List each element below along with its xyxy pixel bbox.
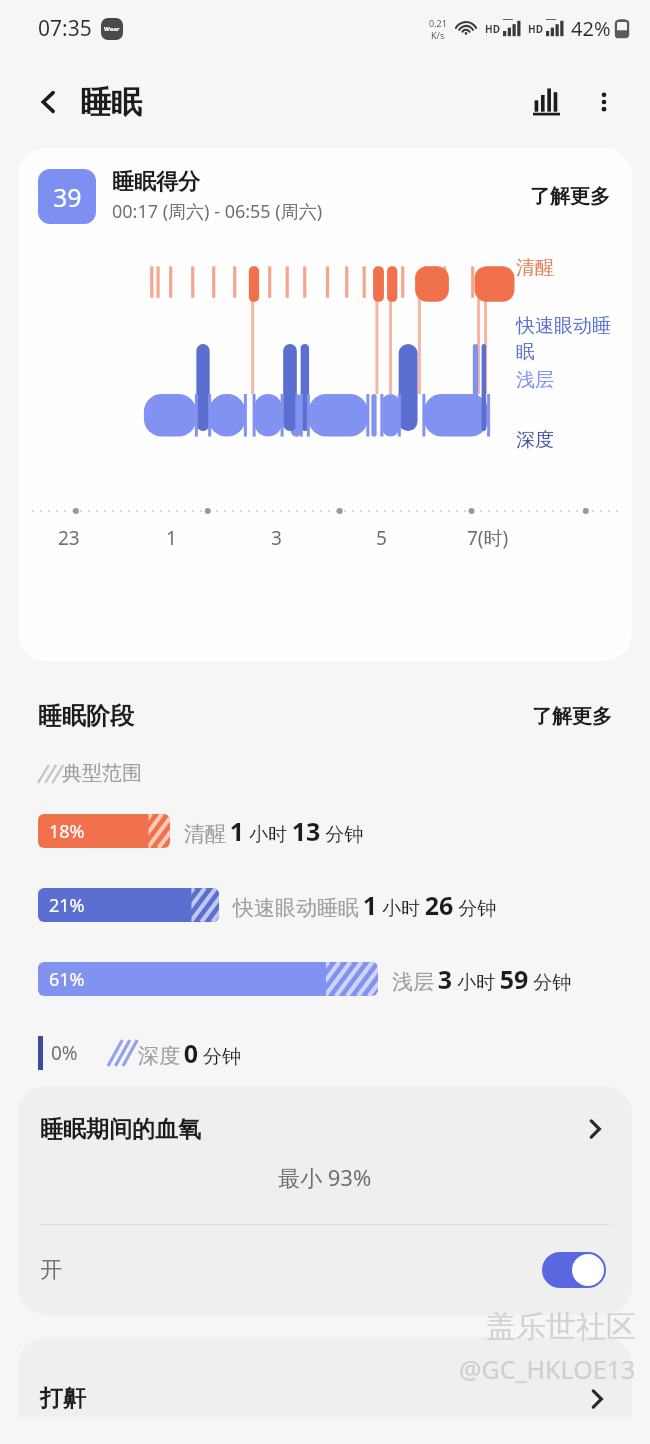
staticText: 清醒 1 小时 13 分钟	[184, 814, 364, 848]
staticText: 深度 0 分钟	[138, 1036, 241, 1070]
staticText: 睡眠得分	[112, 168, 200, 196]
staticText: 61%	[49, 967, 85, 992]
staticText: Wear	[104, 25, 120, 33]
staticText: 18%	[49, 819, 85, 844]
staticText: 39	[53, 180, 82, 214]
staticText: 最小 93%	[278, 1162, 372, 1192]
staticText: 42%	[571, 15, 611, 42]
button[interactable]: 18%	[38, 814, 650, 848]
staticText: 0.21	[429, 17, 447, 29]
staticText: 00:17 (周六) - 06:55 (周六)	[112, 199, 323, 224]
staticText: 典型范围	[62, 761, 142, 786]
staticText: 5	[376, 525, 387, 551]
staticText: 3	[271, 525, 282, 551]
button[interactable]: 0%	[38, 1036, 650, 1070]
staticText: 打鼾	[40, 1384, 86, 1413]
staticText: 深度	[516, 428, 554, 452]
button[interactable]: 61%	[38, 962, 650, 996]
staticText: 睡眠	[80, 83, 142, 122]
staticText: HD	[485, 22, 500, 36]
button[interactable]: 打鼾	[18, 1337, 632, 1417]
staticText: 7(时)	[467, 525, 509, 551]
button[interactable]: 39	[18, 168, 632, 224]
staticText: 1	[166, 525, 177, 551]
other: Toggle blood oxygen	[542, 1252, 606, 1288]
staticText: 开	[40, 1256, 62, 1284]
button[interactable]: Chart	[520, 76, 572, 128]
staticText: 23	[58, 525, 80, 551]
staticText: 盖乐世社区	[486, 1308, 636, 1346]
button[interactable]: 开	[18, 1225, 632, 1315]
button[interactable]: 21%	[38, 888, 650, 922]
staticText: 清醒	[516, 256, 554, 280]
staticText: 睡眠期间的血氧	[40, 1115, 201, 1144]
button[interactable]: Back	[22, 75, 76, 129]
staticText: 浅层	[516, 368, 554, 392]
staticText: K/s	[431, 29, 445, 41]
staticText: 快速眼动睡眠 1 小时 26 分钟	[233, 888, 497, 922]
staticText: 睡眠阶段	[38, 701, 134, 731]
staticText: 21%	[49, 893, 85, 918]
staticText: 浅层 3 小时 59 分钟	[392, 962, 572, 996]
button[interactable]: 睡眠期间的血氧	[18, 1086, 632, 1146]
staticText: 了解更多	[530, 184, 610, 209]
button[interactable]: 睡眠阶段	[38, 701, 612, 731]
staticText: 了解更多	[532, 704, 612, 729]
staticText: @GC_HKLOE13	[459, 1352, 636, 1386]
staticText: 0%	[51, 1040, 78, 1066]
staticText: HD	[528, 22, 543, 36]
button[interactable]: More options	[578, 76, 630, 128]
staticText: 快速眼动睡眠	[516, 314, 628, 364]
other: Open	[578, 1112, 612, 1146]
staticText: 07:35	[38, 14, 92, 43]
